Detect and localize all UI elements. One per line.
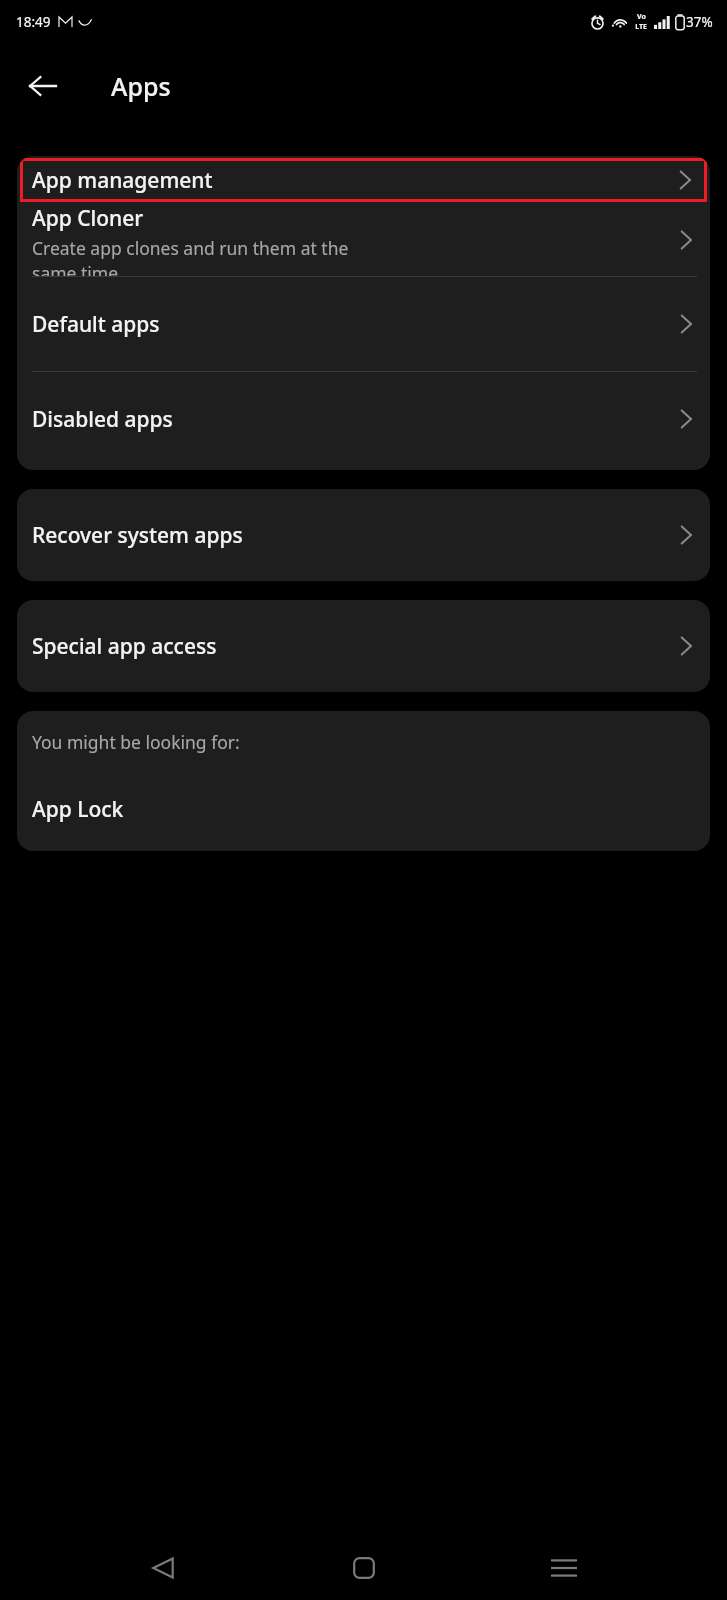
button[interactable]: App Lock <box>17 773 710 845</box>
staticText: Special app access <box>32 632 679 661</box>
staticText: Recover system apps <box>32 521 679 550</box>
button[interactable]: Home <box>327 1536 401 1600</box>
button[interactable]: App Cloner <box>17 204 710 276</box>
staticText: App Cloner <box>32 204 144 233</box>
button[interactable]: Recover system apps <box>17 489 710 581</box>
staticText: 18:49 <box>16 13 51 31</box>
button[interactable]: Disabled apps <box>17 372 710 466</box>
button[interactable]: Default apps <box>17 277 710 371</box>
button[interactable]: Special app access <box>17 600 710 692</box>
staticText: Apps <box>111 69 171 103</box>
staticText: Default apps <box>32 310 679 339</box>
staticText: Vo <box>637 12 646 22</box>
staticText: 37% <box>686 13 713 31</box>
button[interactable]: Back <box>126 1536 200 1600</box>
staticText: App Lock <box>32 795 124 824</box>
staticText: Disabled apps <box>32 405 679 434</box>
button[interactable]: App management <box>20 158 707 202</box>
staticText: LTE <box>635 22 647 32</box>
staticText: Create app clones and run them at the sa… <box>32 236 349 276</box>
staticText: You might be looking for: <box>32 730 240 754</box>
button[interactable]: Recent apps <box>527 1536 601 1600</box>
staticText: App management <box>32 166 678 195</box>
button[interactable]: Back <box>14 58 70 114</box>
